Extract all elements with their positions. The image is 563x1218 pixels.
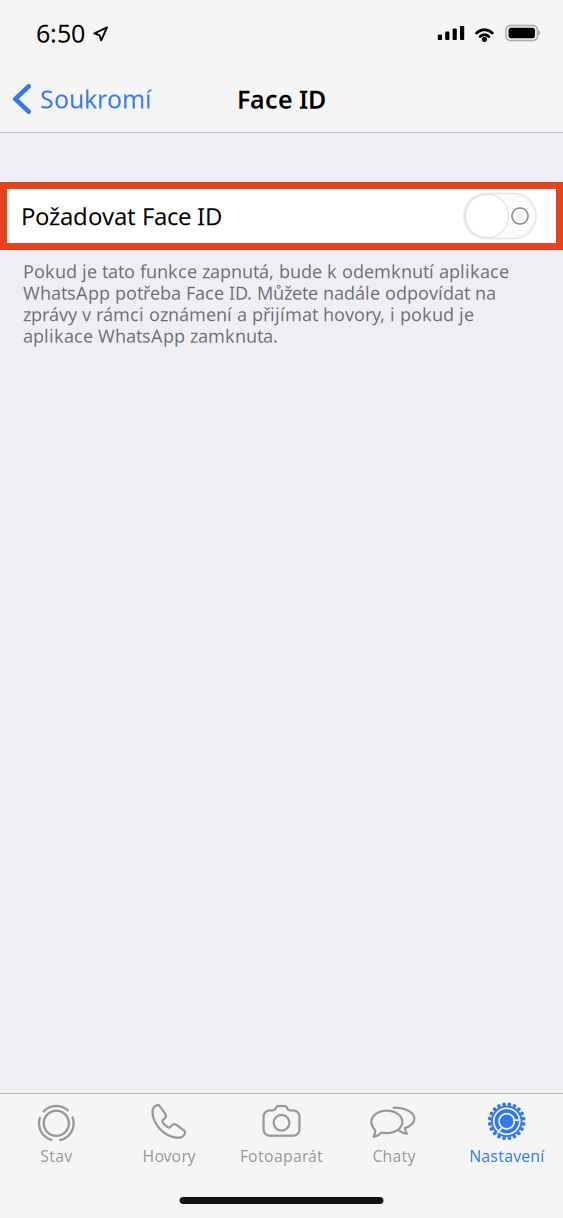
button[interactable]: Stav [0,1090,113,1171]
staticText: Face ID [237,82,326,116]
button[interactable]: Požadovat Face ID [7,189,556,243]
staticText: Chaty [373,1145,416,1167]
staticText: 6:50 [36,16,85,50]
button[interactable]: Soukromí [0,66,163,132]
staticText: Nastavení [469,1145,544,1167]
button[interactable]: Chaty [338,1090,450,1171]
staticText: Stav [40,1145,72,1167]
button[interactable]: Fotoaparát [225,1090,338,1171]
staticText: Hovory [142,1145,195,1167]
staticText: Požadovat Face ID [21,200,222,232]
staticText: Fotoaparát [240,1145,323,1167]
button[interactable]: Hovory [113,1090,225,1171]
staticText: Soukromí [40,82,151,116]
button[interactable]: Nastavení [450,1090,563,1171]
staticText: Pokud je tato funkce zapnutá, bude k ode… [23,259,509,348]
